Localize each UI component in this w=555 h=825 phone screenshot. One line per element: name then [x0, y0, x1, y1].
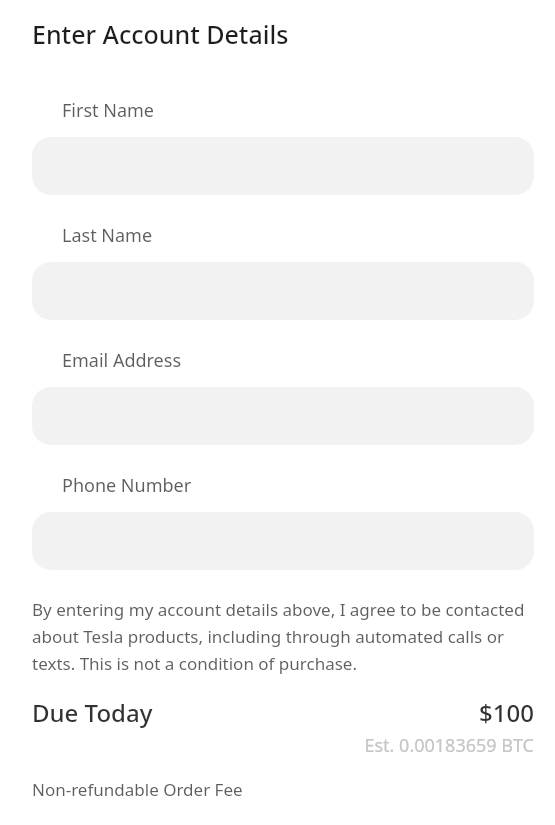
staticText: Enter Account Details [32, 17, 289, 51]
staticText: Est. 0.00183659 BTC [32, 733, 534, 758]
staticText: $100 [479, 696, 534, 729]
staticText: Non-refundable Order Fee [32, 778, 243, 801]
staticText: By entering my account details above, I … [32, 598, 534, 675]
staticText: Email Address [62, 348, 182, 373]
staticText: Last Name [62, 223, 153, 248]
staticText: Due Today [32, 696, 153, 729]
staticText: Phone Number [62, 473, 192, 498]
staticText: First Name [62, 98, 154, 123]
